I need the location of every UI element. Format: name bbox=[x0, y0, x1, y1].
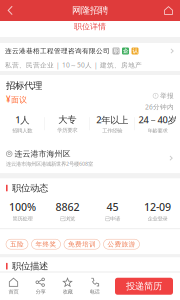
staticText: 企业登录 bbox=[147, 215, 167, 222]
staticText: 企 bbox=[123, 48, 128, 54]
staticText: 收藏 bbox=[62, 288, 72, 295]
button[interactable]: 首页 bbox=[0, 272, 27, 300]
staticText: 已浏览 bbox=[60, 215, 75, 222]
staticText: 1人 bbox=[15, 113, 29, 126]
staticText: ¥面议 bbox=[6, 94, 27, 105]
staticText: 已申请 bbox=[105, 215, 120, 222]
button[interactable]: Home bbox=[157, 0, 180, 21]
staticText: 100% bbox=[9, 200, 36, 214]
button[interactable]: 连云港巷梧工程管理咨询有限公司 bbox=[0, 43, 180, 71]
button[interactable]: 分享 bbox=[27, 272, 54, 300]
button[interactable]: 连云港市海州区 bbox=[0, 149, 180, 173]
staticText: 职 bbox=[113, 48, 118, 54]
staticText: 职位描述 bbox=[12, 260, 48, 272]
staticText: 职位详情 bbox=[74, 22, 106, 31]
staticText: 26分钟内 bbox=[145, 102, 174, 111]
staticText: 分享 bbox=[35, 288, 45, 295]
staticText: 电话 bbox=[89, 288, 99, 295]
staticText: 45 bbox=[106, 200, 118, 214]
staticText: 工作经验 bbox=[102, 127, 122, 134]
staticText: 年终奖 bbox=[35, 240, 56, 248]
staticText: 招标代理 bbox=[6, 80, 42, 91]
staticText: 举报 bbox=[160, 92, 174, 100]
staticText: 公费旅游 bbox=[107, 240, 135, 248]
staticText: 认 bbox=[132, 48, 137, 54]
staticText: 年龄要求 bbox=[147, 127, 167, 134]
staticText: 免费培训 bbox=[68, 240, 96, 248]
staticText: 连云港巷梧工程管理咨询有限公司 bbox=[5, 47, 110, 55]
staticText: 大专 bbox=[58, 114, 76, 125]
button[interactable]: 职位详情 bbox=[62, 21, 118, 32]
staticText: 连云港市海州区 bbox=[14, 149, 70, 159]
staticText: 职位动态 bbox=[12, 182, 48, 194]
staticText: 招聘人数 bbox=[12, 127, 32, 134]
button[interactable]: 收藏 bbox=[54, 272, 81, 300]
staticText: 8862 bbox=[55, 200, 79, 214]
staticText: 连云港市海州区港城新世界2号楼608室 bbox=[6, 160, 93, 167]
staticText: 首页 bbox=[8, 288, 18, 295]
staticText: 学历要求 bbox=[57, 127, 77, 133]
staticText: 12-09 bbox=[144, 200, 171, 214]
button[interactable]: 投递简历 bbox=[115, 278, 173, 295]
staticText: 五险 bbox=[10, 240, 24, 248]
staticText: 私营、民营企业 | 10～50人 | 建筑、房地产 bbox=[5, 61, 142, 69]
staticText: 简历处理 bbox=[12, 215, 32, 222]
staticText: 网隆招聘 bbox=[72, 5, 108, 16]
button[interactable]: Back bbox=[0, 0, 20, 21]
staticText: 投递简历 bbox=[126, 280, 162, 292]
staticText: 2年以上 bbox=[96, 113, 128, 126]
button[interactable]: 举报 bbox=[153, 92, 174, 100]
staticText: 24－40岁 bbox=[138, 113, 176, 126]
button[interactable]: 电话 bbox=[81, 272, 108, 300]
